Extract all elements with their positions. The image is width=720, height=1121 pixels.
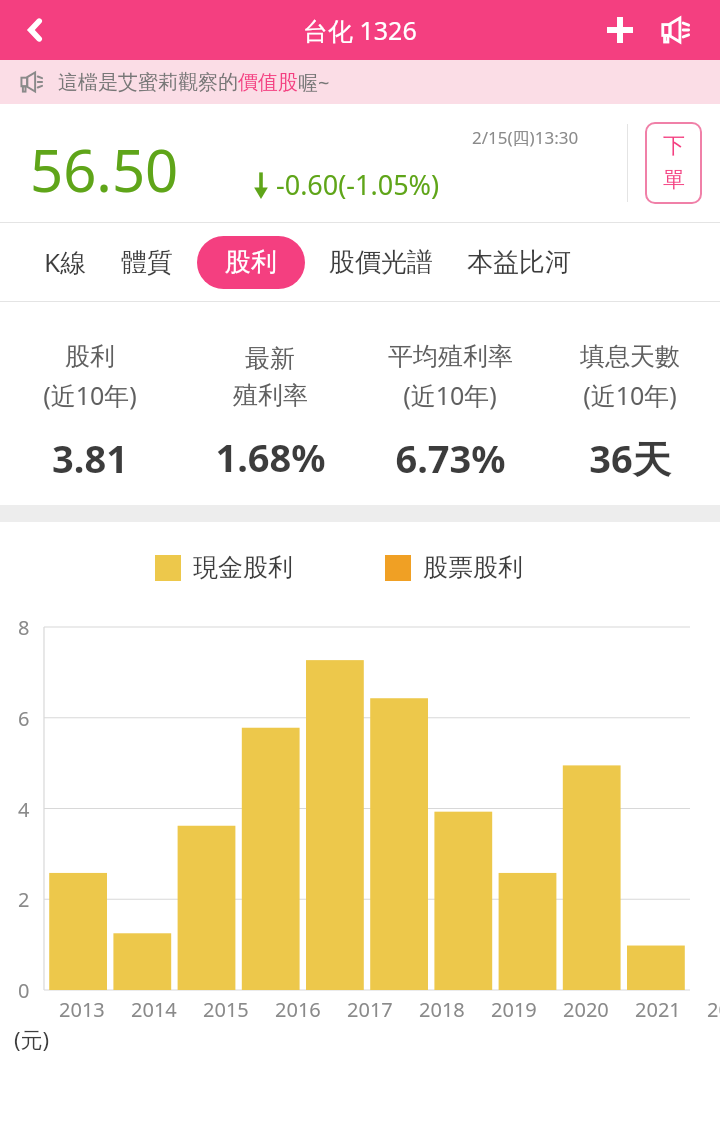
staticText: 現金股利 (193, 552, 293, 583)
staticText: 2019 (491, 996, 537, 1023)
button[interactable]: 本益比河 (457, 236, 581, 289)
button[interactable]: 體質 (111, 236, 183, 289)
staticText: 0 (18, 977, 30, 1004)
staticText: 2014 (131, 996, 177, 1023)
staticText: 2017 (347, 996, 393, 1023)
staticText: (元) (14, 1024, 50, 1054)
staticText: 6 (18, 705, 30, 732)
staticText: 3.81 (52, 432, 128, 484)
staticText: (近10年) (583, 378, 677, 412)
staticText: 2/15(四)13:30 (472, 126, 579, 149)
staticText: 1.68% (215, 431, 326, 483)
staticText: 殖利率 (233, 380, 308, 411)
staticText: 台化 1326 (303, 13, 417, 47)
button[interactable]: 這檔是艾蜜莉觀察的 (0, 60, 720, 104)
staticText: 2016 (275, 996, 321, 1023)
button[interactable]: 最新 (180, 325, 360, 483)
button[interactable]: Back (0, 0, 70, 60)
button[interactable]: 平均殖利率 (360, 323, 540, 484)
staticText: 2020 (563, 996, 609, 1023)
staticText: 股利 (65, 341, 115, 372)
staticText: 股利 (225, 246, 277, 279)
staticText: 2013 (59, 996, 105, 1023)
staticText: 本益比河 (467, 246, 571, 279)
staticText: 填息天數 (580, 341, 680, 372)
button[interactable]: 股利 (0, 323, 180, 484)
staticText: 平均殖利率 (388, 341, 513, 372)
staticText: 體質 (121, 246, 173, 279)
staticText: 這檔是艾蜜莉觀察的 (58, 70, 238, 95)
staticText: 8 (18, 614, 30, 641)
staticText: (近10年) (403, 378, 497, 412)
staticText: 2 (18, 886, 30, 913)
button[interactable]: Announcements (648, 2, 704, 58)
staticText: 6.73% (395, 432, 506, 484)
staticText: 股價光譜 (329, 246, 433, 279)
button[interactable]: 股價光譜 (319, 236, 443, 289)
staticText: -0.60(-1.05%) (276, 166, 440, 203)
staticText: 最新 (245, 343, 295, 374)
staticText: 2021 (635, 996, 681, 1023)
staticText: 4 (18, 796, 30, 823)
staticText: 2015 (203, 996, 249, 1023)
button[interactable]: 填息天數 (540, 323, 720, 484)
staticText: 喔~ (298, 69, 330, 96)
staticText: 價值股 (238, 70, 298, 95)
staticText: 56.50 (30, 130, 179, 209)
staticText: 股票股利 (423, 552, 523, 583)
staticText: 2022 (707, 996, 720, 1023)
staticText: 36天 (589, 432, 671, 484)
staticText: K線 (44, 244, 87, 280)
staticText: (近10年) (43, 378, 137, 412)
button[interactable]: Add to watchlist (592, 2, 648, 58)
staticText: 2018 (419, 996, 465, 1023)
button[interactable]: 下 (645, 122, 702, 204)
staticText: 單 (663, 166, 685, 194)
button[interactable]: 股利 (197, 236, 305, 289)
staticText: 下 (663, 132, 685, 160)
button[interactable]: K線 (34, 234, 97, 290)
